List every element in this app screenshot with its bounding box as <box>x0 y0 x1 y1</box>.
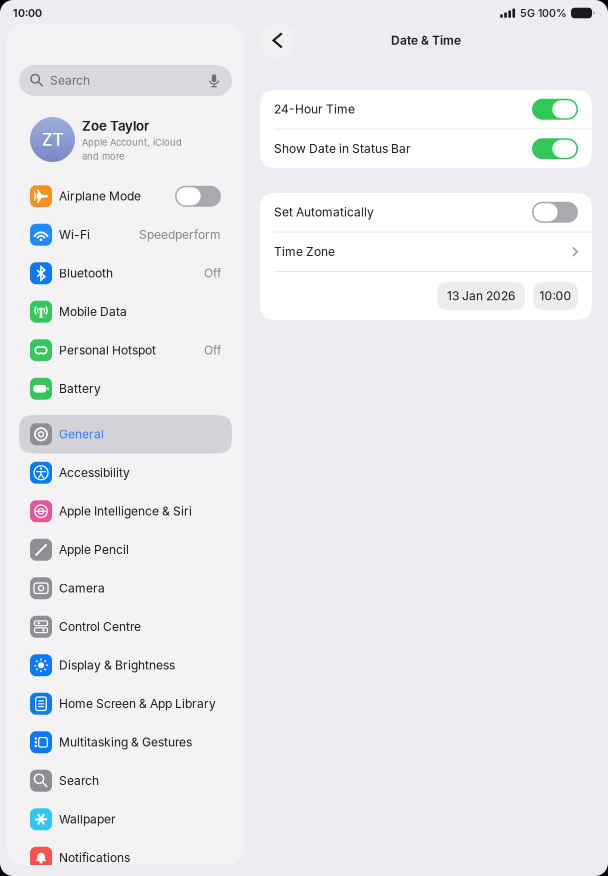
button[interactable]: 10:00 <box>533 282 578 310</box>
button[interactable]: Set Automatically <box>260 193 592 231</box>
staticText: 5G 100% <box>520 7 567 19</box>
staticText: 10:00 <box>13 7 42 19</box>
staticText: Wi-Fi <box>59 228 90 242</box>
staticText: 24-Hour Time <box>274 102 355 116</box>
staticText: and more <box>82 151 124 162</box>
staticText: Mobile Data <box>59 305 127 319</box>
button[interactable]: Multitasking & Gestures <box>19 723 232 761</box>
staticText: Apple Pencil <box>59 543 129 557</box>
button[interactable]: 24-Hour Time <box>260 90 592 128</box>
button[interactable]: Time Zone <box>260 232 592 271</box>
staticText: Notifications <box>59 851 130 865</box>
button[interactable]: General <box>19 415 232 453</box>
button[interactable]: Apple Intelligence & Siri <box>19 492 232 530</box>
button[interactable]: Apple Pencil <box>19 530 232 569</box>
staticText: Time Zone <box>274 245 335 259</box>
staticText: Search <box>50 73 90 88</box>
button[interactable]: Back <box>260 23 295 58</box>
staticText: Wallpaper <box>59 812 116 826</box>
staticText: Camera <box>59 581 105 595</box>
button[interactable]: Wallpaper <box>19 800 232 838</box>
button[interactable]: Airplane Mode <box>19 177 232 215</box>
staticText: General <box>59 427 104 441</box>
staticText: Apple Intelligence & Siri <box>59 504 192 518</box>
button[interactable]: Control Centre <box>19 607 232 646</box>
staticText: 13 Jan 2026 <box>447 289 515 303</box>
staticText: Date & Time <box>391 33 461 48</box>
button[interactable]: Wi-Fi <box>19 215 232 254</box>
button[interactable]: Search <box>19 65 232 96</box>
button[interactable]: Home Screen & App Library <box>19 684 232 723</box>
staticText: Zoe Taylor <box>82 118 149 134</box>
button[interactable]: Search <box>19 761 232 800</box>
button[interactable]: Battery <box>19 369 232 408</box>
staticText: Accessibility <box>59 466 130 480</box>
button[interactable]: 13 Jan 2026 <box>437 282 525 310</box>
staticText: Search <box>59 774 99 788</box>
staticText: Off <box>204 343 221 357</box>
staticText: Apple Account, iCloud <box>82 137 182 148</box>
staticText: Control Centre <box>59 620 141 634</box>
button[interactable]: Show Date in Status Bar <box>260 129 592 168</box>
staticText: Display & Brightness <box>59 658 175 672</box>
button[interactable]: ZT <box>30 117 235 167</box>
staticText: Battery <box>59 382 101 396</box>
staticText: Personal Hotspot <box>59 343 156 357</box>
button[interactable]: Mobile Data <box>19 292 232 331</box>
button[interactable]: Notifications <box>19 838 232 876</box>
staticText: Speedperform <box>139 228 221 242</box>
button[interactable]: Camera <box>19 569 232 607</box>
staticText: Home Screen & App Library <box>59 697 216 711</box>
button[interactable]: Accessibility <box>19 453 232 492</box>
staticText: Set Automatically <box>274 205 374 219</box>
staticText: ZT <box>41 129 63 150</box>
button[interactable]: Display & Brightness <box>19 646 232 684</box>
staticText: Airplane Mode <box>59 189 141 203</box>
staticText: Bluetooth <box>59 266 113 280</box>
staticText: Multitasking & Gestures <box>59 735 192 749</box>
staticText: Off <box>204 266 221 280</box>
button[interactable]: Bluetooth <box>19 254 232 292</box>
staticText: 10:00 <box>539 289 571 303</box>
button[interactable]: Personal Hotspot <box>19 331 232 369</box>
staticText: Show Date in Status Bar <box>274 142 411 156</box>
